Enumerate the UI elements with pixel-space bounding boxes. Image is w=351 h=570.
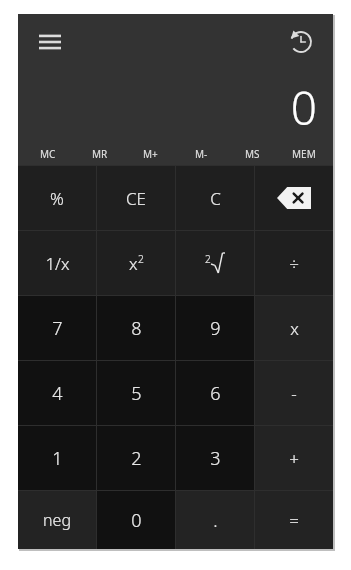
button[interactable]: 1/x: [18, 231, 96, 295]
button[interactable]: %: [18, 166, 96, 230]
button[interactable]: 0: [97, 491, 175, 549]
staticText: 9: [210, 316, 221, 341]
staticText: M-: [195, 147, 208, 161]
button[interactable]: 1: [18, 426, 96, 490]
staticText: 2: [138, 252, 144, 266]
button[interactable]: Menu: [28, 20, 72, 64]
button[interactable]: +: [255, 426, 333, 490]
button[interactable]: 5: [97, 361, 175, 425]
staticText: M+: [143, 147, 158, 161]
staticText: MC: [40, 147, 56, 161]
button[interactable]: Backspace: [255, 166, 333, 230]
button[interactable]: -: [255, 361, 333, 425]
button[interactable]: M+: [125, 143, 176, 165]
button[interactable]: CE: [97, 166, 175, 230]
staticText: 2: [205, 252, 211, 266]
staticText: 8: [131, 316, 142, 341]
staticText: .: [213, 508, 218, 533]
button[interactable]: MEM: [278, 143, 329, 165]
staticText: 5: [131, 381, 142, 406]
button[interactable]: 2: [97, 426, 175, 490]
staticText: x: [129, 252, 138, 275]
staticText: ÷: [289, 252, 299, 275]
staticText: 7: [52, 316, 63, 341]
staticText: neg: [43, 509, 71, 531]
button[interactable]: neg: [18, 491, 96, 549]
staticText: MR: [92, 147, 108, 161]
staticText: 2: [131, 446, 142, 471]
staticText: x: [290, 317, 299, 340]
staticText: 3: [210, 446, 221, 471]
button[interactable]: =: [255, 491, 333, 549]
staticText: 4: [52, 381, 63, 406]
staticText: MEM: [292, 147, 316, 161]
button[interactable]: Square root: [176, 231, 254, 295]
button[interactable]: 8: [97, 296, 175, 360]
staticText: 0: [131, 508, 142, 533]
staticText: +: [289, 447, 299, 470]
button[interactable]: x: [255, 296, 333, 360]
button[interactable]: 4: [18, 361, 96, 425]
button[interactable]: MR: [74, 143, 125, 165]
button[interactable]: History: [279, 20, 323, 64]
staticText: 1/x: [45, 252, 70, 275]
staticText: 1: [52, 446, 63, 471]
staticText: C: [210, 187, 221, 210]
staticText: =: [289, 509, 299, 532]
staticText: MS: [245, 147, 260, 161]
button[interactable]: 7: [18, 296, 96, 360]
button[interactable]: M-: [176, 143, 227, 165]
staticText: %: [50, 187, 64, 210]
button[interactable]: .: [176, 491, 254, 549]
button[interactable]: MS: [227, 143, 278, 165]
staticText: 6: [210, 381, 221, 406]
button[interactable]: ÷: [255, 231, 333, 295]
button[interactable]: MC: [22, 143, 74, 165]
button[interactable]: x: [97, 231, 175, 295]
staticText: CE: [126, 187, 146, 210]
staticText: -: [291, 382, 297, 405]
button[interactable]: 3: [176, 426, 254, 490]
button[interactable]: C: [176, 166, 254, 230]
button[interactable]: 9: [176, 296, 254, 360]
staticText: 0: [290, 76, 317, 139]
button[interactable]: 6: [176, 361, 254, 425]
